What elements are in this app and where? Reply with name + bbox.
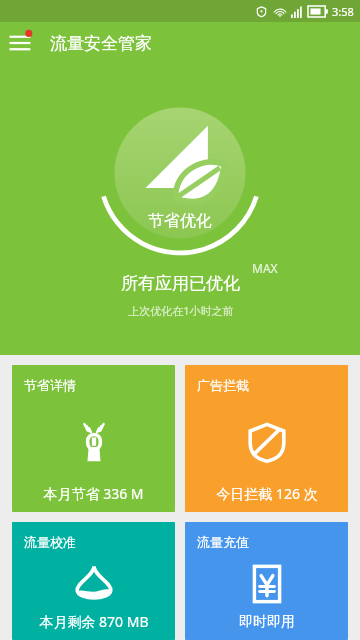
button[interactable]: 广告拦截 bbox=[185, 365, 348, 512]
staticText: 流量安全管家 bbox=[50, 33, 152, 54]
staticText: 今日拦截 126 次 bbox=[216, 484, 318, 503]
staticText: 所有应用已优化 bbox=[121, 273, 240, 294]
staticText: 本月节省 336 M bbox=[43, 484, 144, 503]
button[interactable]: 流量充值 bbox=[185, 522, 348, 640]
staticText: 本月剩余 870 MB bbox=[39, 612, 149, 631]
staticText: 流量充值 bbox=[197, 534, 249, 550]
staticText: 上次优化在1小时之前 bbox=[128, 303, 234, 318]
button[interactable]: Menu bbox=[0, 22, 42, 64]
staticText: 3:58 bbox=[332, 4, 354, 19]
staticText: 广告拦截 bbox=[197, 377, 249, 393]
button[interactable]: 节省详情 bbox=[12, 365, 175, 512]
staticText: 流量校准 bbox=[24, 534, 76, 550]
staticText: 节省详情 bbox=[24, 377, 76, 393]
button[interactable]: Optimize bbox=[97, 90, 263, 256]
staticText: 即时即用 bbox=[239, 613, 295, 631]
button[interactable]: 流量校准 bbox=[12, 522, 175, 640]
staticText: MAX bbox=[252, 260, 278, 276]
staticText: 节省优化 bbox=[148, 211, 212, 231]
